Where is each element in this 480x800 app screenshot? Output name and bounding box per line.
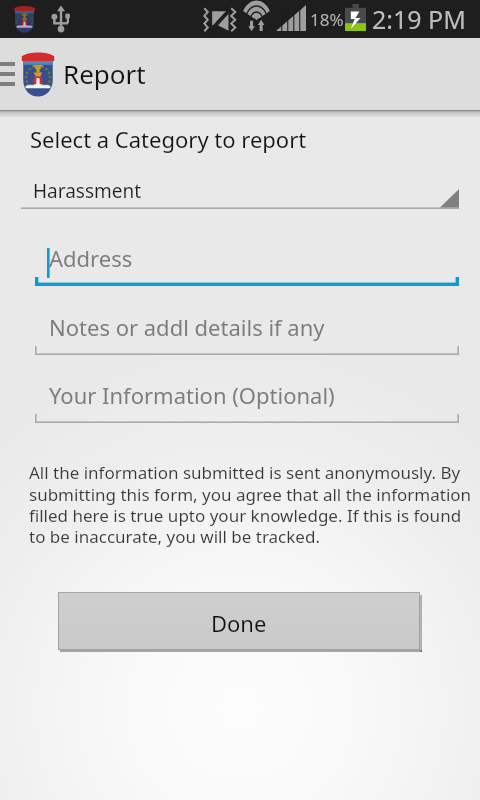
staticText: Harassment xyxy=(33,178,142,204)
staticText: Select a Category to report xyxy=(30,124,307,154)
staticText: Your Information (Optional) xyxy=(49,380,335,410)
staticText: Report xyxy=(63,56,146,91)
staticText: Done xyxy=(211,608,267,638)
staticText: Notes or addl details if any xyxy=(49,312,325,342)
staticText: 18% xyxy=(310,8,344,31)
button[interactable]: Harassment xyxy=(21,175,459,209)
button[interactable]: Your Information (Optional) xyxy=(35,383,459,423)
staticText: 2:19 PM xyxy=(372,2,466,36)
button[interactable]: Notes or addl details if any xyxy=(35,315,459,355)
button[interactable]: Done xyxy=(58,592,422,652)
staticText: All the information submitted is sent an… xyxy=(29,461,480,548)
button[interactable]: Open navigation drawer xyxy=(0,38,18,110)
staticText: Address xyxy=(49,243,133,273)
button[interactable]: Address xyxy=(35,246,459,286)
